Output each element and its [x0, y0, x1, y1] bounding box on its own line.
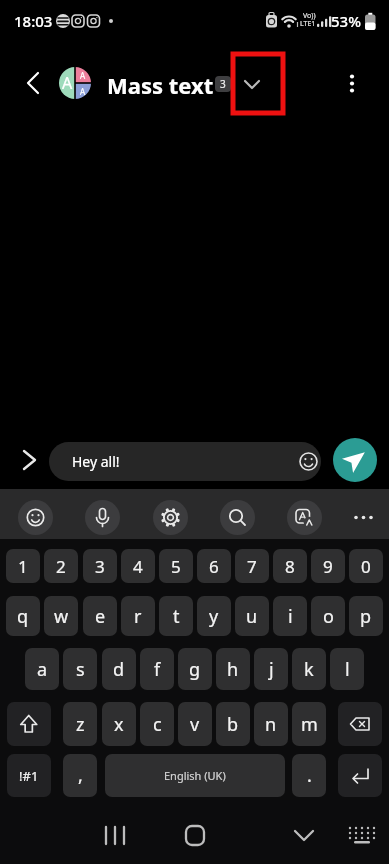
button[interactable]: o	[311, 596, 345, 636]
button[interactable]	[340, 818, 384, 852]
staticText: v	[190, 712, 200, 737]
staticText: 9	[323, 555, 333, 578]
button[interactable]	[14, 444, 46, 476]
staticText: Hey all!	[72, 452, 120, 471]
button[interactable]	[287, 500, 322, 535]
staticText: 6	[209, 555, 219, 578]
staticText: y	[209, 604, 219, 629]
staticText: .	[307, 763, 312, 788]
staticText: b	[227, 712, 239, 737]
button[interactable]: k	[292, 648, 326, 690]
staticText: 53%	[331, 11, 361, 31]
button[interactable]: n	[254, 702, 288, 746]
button[interactable]	[14, 64, 52, 102]
button[interactable]: 5	[159, 549, 193, 583]
staticText: r	[134, 604, 142, 629]
staticText: k	[304, 657, 314, 682]
button[interactable]: Hey all!	[49, 442, 321, 481]
button[interactable]: 9	[311, 549, 345, 583]
button[interactable]: h	[216, 648, 250, 690]
button[interactable]	[338, 754, 382, 797]
button[interactable]: z	[63, 702, 97, 746]
button[interactable]: b	[216, 702, 250, 746]
button[interactable]: 3	[83, 549, 117, 583]
staticText: 7	[247, 555, 257, 578]
button[interactable]	[336, 67, 368, 99]
button[interactable]: 2	[44, 549, 78, 583]
button[interactable]: 8	[273, 549, 307, 583]
staticText: A	[80, 86, 86, 97]
button[interactable]: c	[140, 702, 174, 746]
button[interactable]: i	[273, 596, 307, 636]
button[interactable]	[92, 818, 138, 852]
staticText: LTE1	[300, 19, 316, 28]
button[interactable]: v	[178, 702, 212, 746]
button[interactable]: 4	[121, 549, 155, 583]
button[interactable]: a	[25, 648, 59, 690]
staticText: w	[54, 604, 69, 629]
staticText: 2	[56, 555, 66, 578]
button[interactable]	[172, 818, 218, 852]
button[interactable]: u	[235, 596, 269, 636]
staticText: Mass text	[107, 70, 214, 98]
button[interactable]: 7	[235, 549, 269, 583]
staticText: A	[80, 70, 86, 81]
button[interactable]: r	[121, 596, 155, 636]
button[interactable]	[338, 702, 382, 746]
button[interactable]	[281, 818, 327, 852]
button[interactable]: e	[83, 596, 117, 636]
button[interactable]: d	[102, 648, 136, 690]
button[interactable]	[153, 500, 188, 535]
button[interactable]: !#1	[7, 754, 51, 797]
button[interactable]: q	[6, 596, 40, 636]
button[interactable]	[59, 67, 91, 99]
staticText: English (UK)	[164, 768, 226, 783]
button[interactable]: p	[349, 596, 383, 636]
staticText: e	[95, 604, 106, 629]
button[interactable]: x	[102, 702, 136, 746]
button[interactable]: w	[44, 596, 78, 636]
button[interactable]	[7, 702, 51, 746]
staticText: !#1	[19, 767, 39, 785]
staticText: t	[173, 604, 180, 629]
button[interactable]: j	[254, 648, 288, 690]
staticText: 1	[18, 555, 28, 578]
staticText: 18:03	[14, 11, 53, 31]
button[interactable]: 0	[349, 549, 383, 583]
button[interactable]: l	[330, 648, 364, 690]
button[interactable]: y	[197, 596, 231, 636]
button[interactable]: .	[292, 754, 326, 797]
button[interactable]: f	[140, 648, 174, 690]
button[interactable]	[236, 68, 268, 100]
button[interactable]: 6	[197, 549, 231, 583]
staticText: p	[360, 604, 372, 629]
staticText: n	[265, 712, 277, 737]
staticText: x	[114, 712, 124, 737]
button[interactable]	[220, 500, 255, 535]
staticText: 4	[133, 555, 143, 578]
staticText: 5	[171, 555, 181, 578]
staticText: l	[345, 657, 350, 682]
staticText: d	[113, 657, 125, 682]
staticText: f	[154, 657, 161, 682]
staticText: h	[227, 657, 239, 682]
button[interactable]	[346, 500, 381, 535]
button[interactable]: ,	[63, 754, 97, 797]
button[interactable]: g	[178, 648, 212, 690]
button[interactable]	[18, 500, 53, 535]
button[interactable]: m	[292, 702, 326, 746]
button[interactable]: English (UK)	[105, 754, 285, 797]
staticText: 3	[95, 555, 105, 578]
staticText: j	[269, 657, 274, 682]
staticText: 0	[361, 555, 371, 578]
button[interactable]: t	[159, 596, 193, 636]
staticText: m	[301, 712, 318, 737]
staticText: A	[62, 72, 73, 94]
staticText: s	[76, 657, 85, 682]
button[interactable]: 1	[6, 549, 40, 583]
staticText: u	[246, 604, 258, 629]
staticText: ,	[78, 763, 83, 788]
button[interactable]	[333, 438, 377, 482]
button[interactable]: s	[63, 648, 97, 690]
button[interactable]	[85, 500, 120, 535]
